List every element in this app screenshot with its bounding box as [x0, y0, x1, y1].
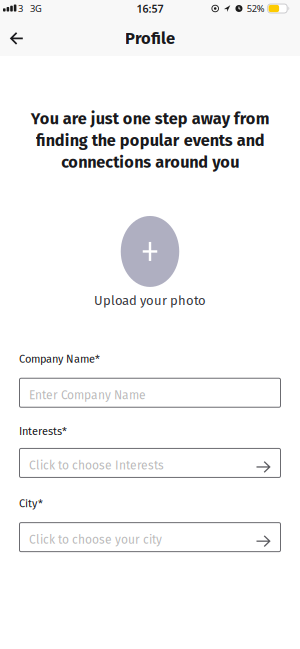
- staticText: Interests*: [19, 425, 67, 438]
- button[interactable]: Back: [0, 24, 23, 53]
- staticText: Profile: [125, 29, 175, 48]
- staticText: 16:57: [136, 1, 163, 16]
- staticText: Click to choose your city: [29, 532, 162, 547]
- button[interactable]: Click to choose your city: [19, 522, 281, 552]
- staticText: You are just one step away from finding …: [30, 109, 269, 172]
- staticText: Click to choose Interests: [29, 458, 164, 473]
- staticText: City*: [19, 497, 43, 510]
- staticText: 3: [18, 2, 23, 15]
- staticText: 52%: [247, 2, 265, 15]
- button[interactable]: Click to choose Interests: [19, 448, 281, 478]
- staticText: 3G: [30, 2, 42, 15]
- button[interactable]: Enter Company Name: [19, 378, 281, 408]
- staticText: Company Name*: [19, 353, 100, 366]
- staticText: Enter Company Name: [29, 388, 146, 402]
- staticText: Upload your photo: [94, 293, 206, 309]
- button[interactable]: Upload your photo: [121, 216, 179, 287]
